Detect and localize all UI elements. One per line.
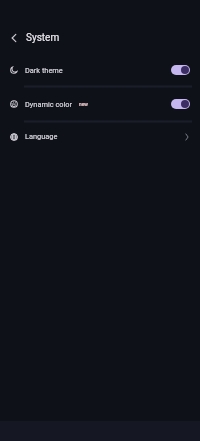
staticText: new xyxy=(79,102,88,108)
button[interactable]: Toggle xyxy=(171,65,190,75)
button[interactable]: Language xyxy=(0,122,200,151)
staticText: Dynamic color xyxy=(25,100,73,109)
button[interactable]: Navigate up xyxy=(2,26,26,50)
staticText: Language xyxy=(25,132,58,141)
staticText: System xyxy=(26,32,60,44)
button[interactable]: Open language settings xyxy=(180,130,194,144)
button[interactable]: Toggle xyxy=(171,99,190,109)
button[interactable]: Dark theme xyxy=(0,53,200,87)
staticText: Dark theme xyxy=(25,66,63,75)
button[interactable]: Dynamic color xyxy=(0,87,200,121)
